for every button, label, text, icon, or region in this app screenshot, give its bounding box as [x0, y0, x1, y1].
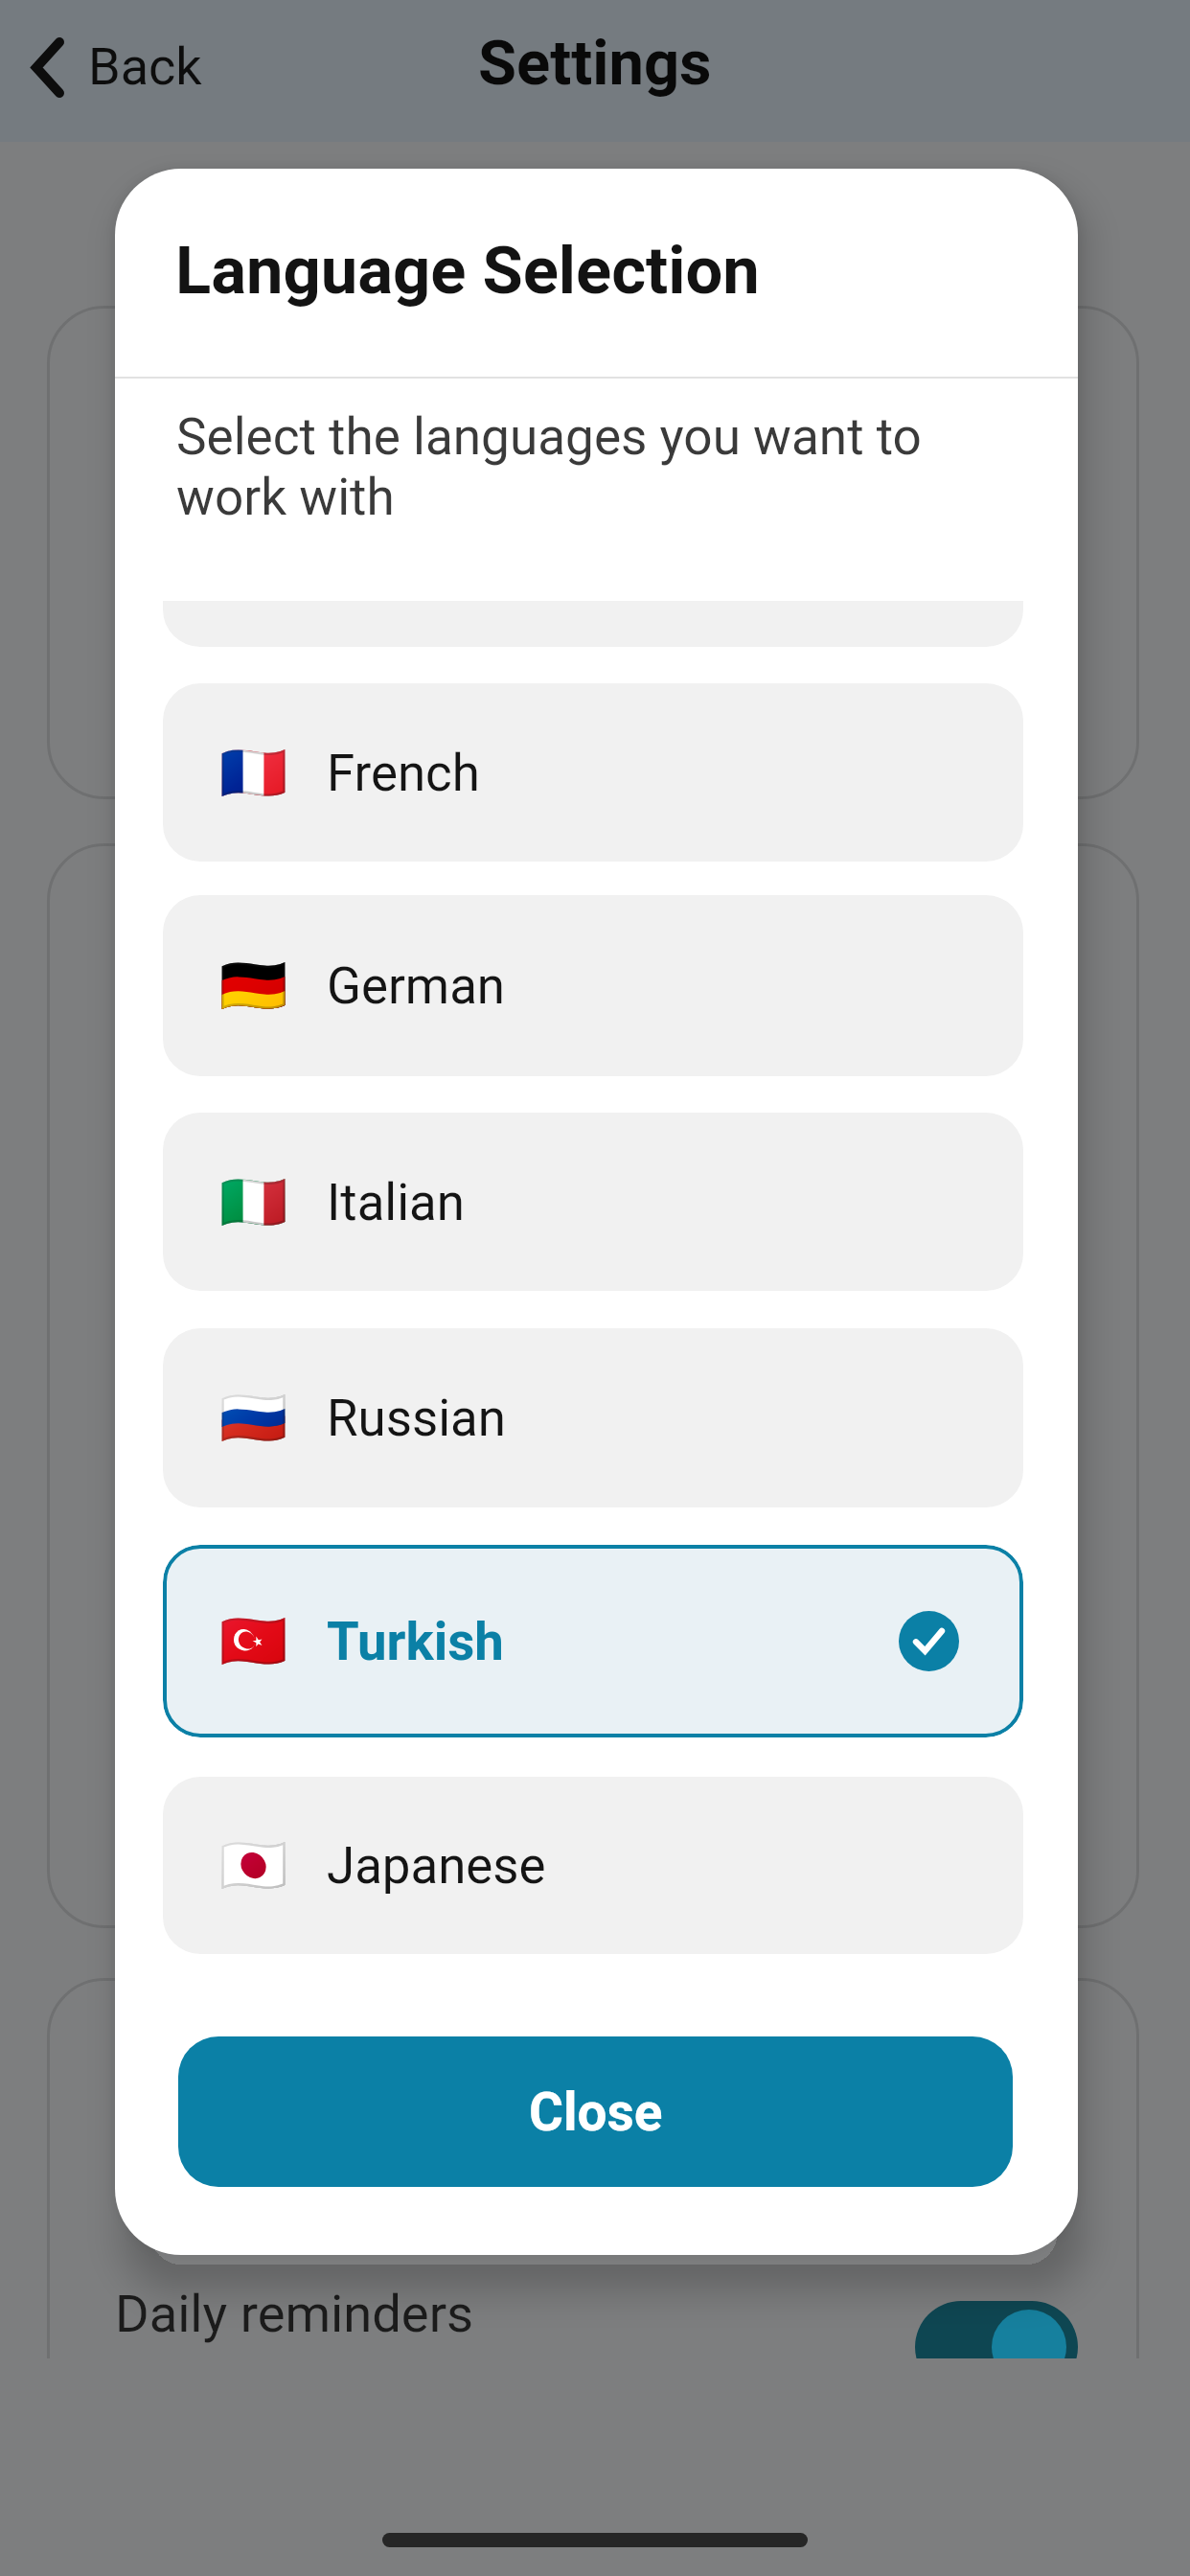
- button[interactable]: 🇷🇺: [163, 1328, 1023, 1507]
- staticText: 🇫🇷: [219, 741, 287, 805]
- staticText: Close: [529, 2081, 663, 2143]
- staticText: Turkish: [327, 1611, 504, 1672]
- staticText: 🇹🇷: [219, 1609, 287, 1673]
- staticText: Daily reminders: [115, 2284, 474, 2345]
- button[interactable]: 🇯🇵: [163, 1777, 1023, 1954]
- button[interactable]: 🇩🇪: [163, 895, 1023, 1076]
- staticText: 🇩🇪: [219, 954, 287, 1018]
- button[interactable]: Back: [32, 8, 202, 126]
- staticText: 🇮🇹: [219, 1170, 287, 1234]
- button[interactable]: 🇮🇹: [163, 1113, 1023, 1291]
- button[interactable]: Close: [178, 2036, 1013, 2187]
- staticText: Select the languages you want to work wi…: [176, 407, 941, 527]
- staticText: French: [327, 744, 480, 803]
- staticText: Italian: [327, 1173, 465, 1232]
- staticText: Language Selection: [175, 232, 760, 310]
- staticText: 🇷🇺: [219, 1386, 287, 1450]
- staticText: Back: [88, 36, 202, 97]
- staticText: Japanese: [327, 1836, 546, 1896]
- staticText: German: [327, 956, 506, 1016]
- staticText: Russian: [327, 1389, 506, 1448]
- button[interactable]: 🇫🇷: [163, 683, 1023, 862]
- button[interactable]: 🇹🇷: [163, 1545, 1023, 1737]
- button[interactable]: Daily reminders: [66, 2211, 1141, 2358]
- staticText: Settings: [478, 27, 712, 100]
- other: Back: [32, 37, 64, 98]
- staticText: 🇯🇵: [219, 1833, 287, 1897]
